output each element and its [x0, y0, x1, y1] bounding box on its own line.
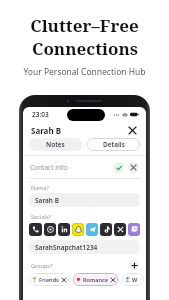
- button[interactable]: Add group: [129, 260, 139, 270]
- staticText: Name?: [31, 184, 49, 191]
- staticText: Sarah B: [31, 125, 62, 136]
- staticText: Clutter–Free: [30, 14, 139, 37]
- staticText: Notes: [46, 140, 65, 149]
- button[interactable]: Threads: [44, 223, 56, 236]
- staticText: Friends: [39, 276, 59, 283]
- button[interactable]: More groups: [122, 273, 144, 286]
- button[interactable]: Details: [87, 138, 140, 151]
- staticText: Details: [103, 140, 125, 149]
- button[interactable]: TikTok: [100, 223, 112, 236]
- staticText: Romance: [83, 276, 108, 283]
- button[interactable]: Notes: [29, 138, 82, 151]
- staticText: Your Personal Connection Hub: [23, 66, 146, 78]
- staticText: W: [132, 276, 138, 283]
- button[interactable]: SarahSnapchat1234: [29, 240, 140, 254]
- button[interactable]: Twitch: [128, 223, 140, 236]
- staticText: Groups?: [31, 262, 53, 269]
- staticText: Connections: [32, 37, 138, 60]
- staticText: Sarah B: [35, 196, 59, 205]
- button[interactable]: Friends: [32, 273, 66, 286]
- button[interactable]: Dismiss: [128, 162, 139, 173]
- staticText: 23:03: [32, 110, 49, 119]
- button[interactable]: Confirm: [113, 162, 124, 173]
- button[interactable]: X: [114, 223, 126, 236]
- button[interactable]: Telegram: [86, 223, 98, 236]
- button[interactable]: Phone: [29, 223, 42, 236]
- button[interactable]: Close: [127, 125, 138, 136]
- button[interactable]: Snapchat: [72, 223, 84, 236]
- staticText: Contact info: [30, 163, 68, 172]
- button[interactable]: Romance: [76, 273, 115, 286]
- button[interactable]: LinkedIn: [58, 223, 70, 236]
- button[interactable]: Sarah B: [29, 193, 140, 207]
- staticText: Socials?: [31, 213, 51, 220]
- staticText: SarahSnapchat1234: [35, 243, 98, 252]
